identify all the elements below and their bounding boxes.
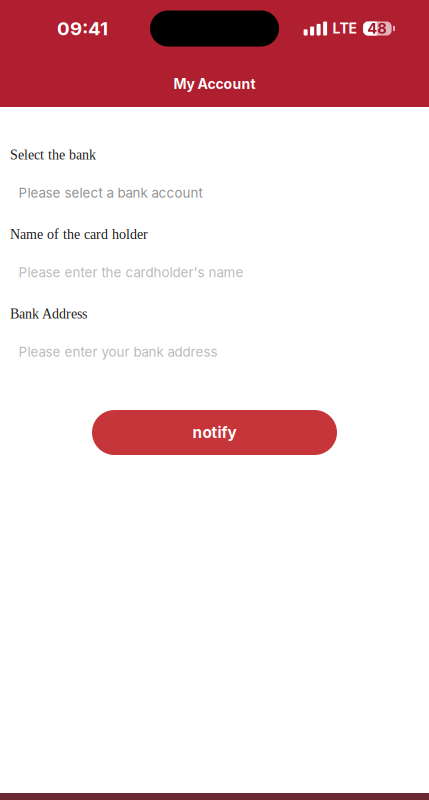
button[interactable]: Please select a bank account xyxy=(0,181,429,205)
staticText: Please enter the cardholder's name xyxy=(18,264,243,280)
staticText: Please enter your bank address xyxy=(18,344,217,360)
staticText: 48 xyxy=(367,20,387,37)
staticText: My Account xyxy=(173,75,255,92)
staticText: 09:41 xyxy=(57,17,108,40)
button[interactable]: notify xyxy=(92,410,337,455)
staticText: notify xyxy=(192,423,236,442)
button[interactable]: Please enter the cardholder's name xyxy=(0,260,429,284)
staticText: LTE xyxy=(333,20,358,37)
staticText: Please select a bank account xyxy=(18,185,202,201)
staticText: Bank Address xyxy=(10,306,87,321)
button[interactable]: Please enter your bank address xyxy=(0,340,429,364)
staticText: Select the bank xyxy=(10,147,96,162)
staticText: Name of the card holder xyxy=(10,226,148,242)
